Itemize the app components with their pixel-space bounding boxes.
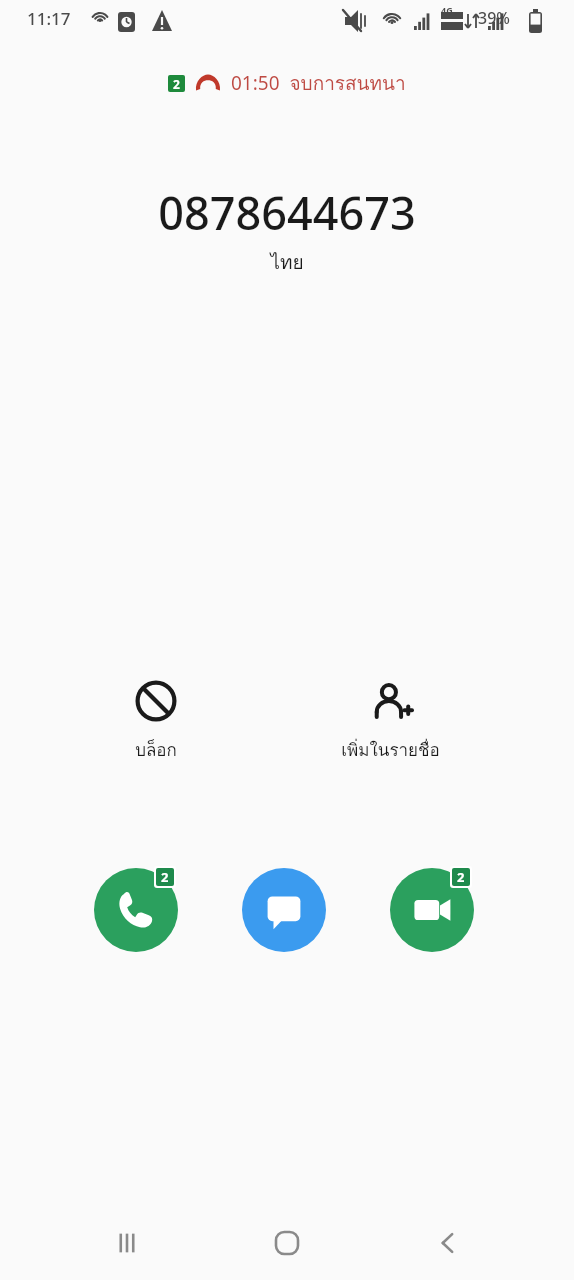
staticText: 11:17 xyxy=(27,7,71,30)
button[interactable]: Home xyxy=(253,1209,321,1277)
staticText: 2 xyxy=(173,76,180,92)
button[interactable]: 2 xyxy=(0,68,574,98)
button[interactable]: Message xyxy=(242,868,326,952)
staticText: 0878644673 xyxy=(158,182,416,243)
button[interactable]: Back xyxy=(414,1209,482,1277)
staticText: บล็อก xyxy=(135,736,177,763)
staticText: 2 xyxy=(457,868,465,886)
staticText: 01:50 จบการสนทนา xyxy=(231,68,406,98)
button[interactable]: Call xyxy=(94,868,178,952)
staticText: เพิ่มในรายชื่อ xyxy=(341,736,440,763)
button[interactable]: Recents xyxy=(93,1209,161,1277)
staticText: 4G xyxy=(441,4,453,16)
staticText: 2 xyxy=(161,868,169,886)
button[interactable]: Block xyxy=(127,676,185,767)
staticText: ไทย xyxy=(270,247,304,277)
staticText: 39% xyxy=(478,7,510,29)
button[interactable]: Video call xyxy=(390,868,474,952)
button[interactable]: Add to contacts xyxy=(333,676,448,767)
